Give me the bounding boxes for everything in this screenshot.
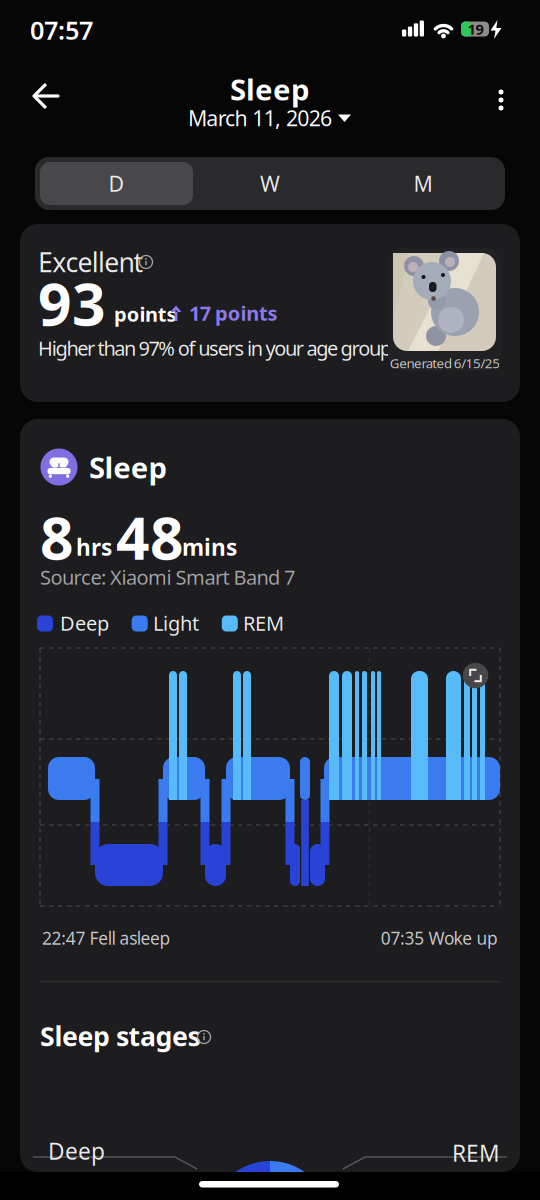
- staticText: REM: [452, 1138, 500, 1168]
- staticText: Deep: [48, 1136, 105, 1166]
- staticText: 22:47 Fell asleep: [42, 926, 171, 949]
- staticText: Generated 6/15/25: [390, 354, 500, 372]
- staticText: 07:35 Woke up: [381, 926, 498, 949]
- staticText: March 11, 2026: [188, 104, 332, 132]
- staticText: 17 points: [189, 300, 278, 326]
- staticText: 48: [116, 498, 184, 576]
- staticText: Sleep stages: [40, 1018, 200, 1054]
- staticText: REM: [243, 610, 284, 636]
- staticText: mins: [182, 532, 237, 562]
- staticText: M: [413, 169, 432, 198]
- staticText: Sleep: [230, 69, 310, 108]
- staticText: Source: Xiaomi Smart Band 7: [40, 564, 295, 590]
- staticText: 19: [467, 19, 483, 39]
- staticText: Light: [153, 610, 199, 636]
- staticText: 07:57: [30, 13, 93, 47]
- staticText: 8: [40, 498, 74, 576]
- staticText: Sleep: [89, 447, 167, 486]
- staticText: 93: [38, 264, 106, 342]
- staticText: Deep: [60, 610, 109, 636]
- staticText: W: [260, 169, 280, 198]
- staticText: hrs: [76, 532, 112, 562]
- staticText: Excellent: [38, 244, 144, 280]
- staticText: Higher than 97% of users in your age gro…: [38, 335, 396, 361]
- staticText: D: [108, 169, 124, 198]
- staticText: points: [114, 301, 176, 327]
